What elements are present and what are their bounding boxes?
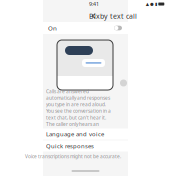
staticText: Bixby text call — [89, 11, 137, 21]
staticText: Quick responses — [46, 142, 94, 150]
button[interactable]: Back — [91, 12, 97, 20]
staticText: 9:41 — [89, 0, 99, 8]
staticText: ▲ — [146, 1, 149, 6]
staticText: Voice transcriptions might not be accura… — [25, 153, 121, 160]
staticText: Language and voice — [46, 130, 104, 138]
button[interactable]: More information — [120, 79, 127, 86]
staticText: ● — [150, 1, 154, 6]
button[interactable]: Quick responses — [43, 140, 128, 151]
staticText: On — [48, 24, 57, 32]
staticText: Calls are answered automatically and res… — [46, 88, 111, 134]
staticText: ▮ — [155, 1, 157, 6]
button[interactable]: On — [43, 22, 128, 34]
button[interactable]: Language and voice — [43, 128, 128, 139]
